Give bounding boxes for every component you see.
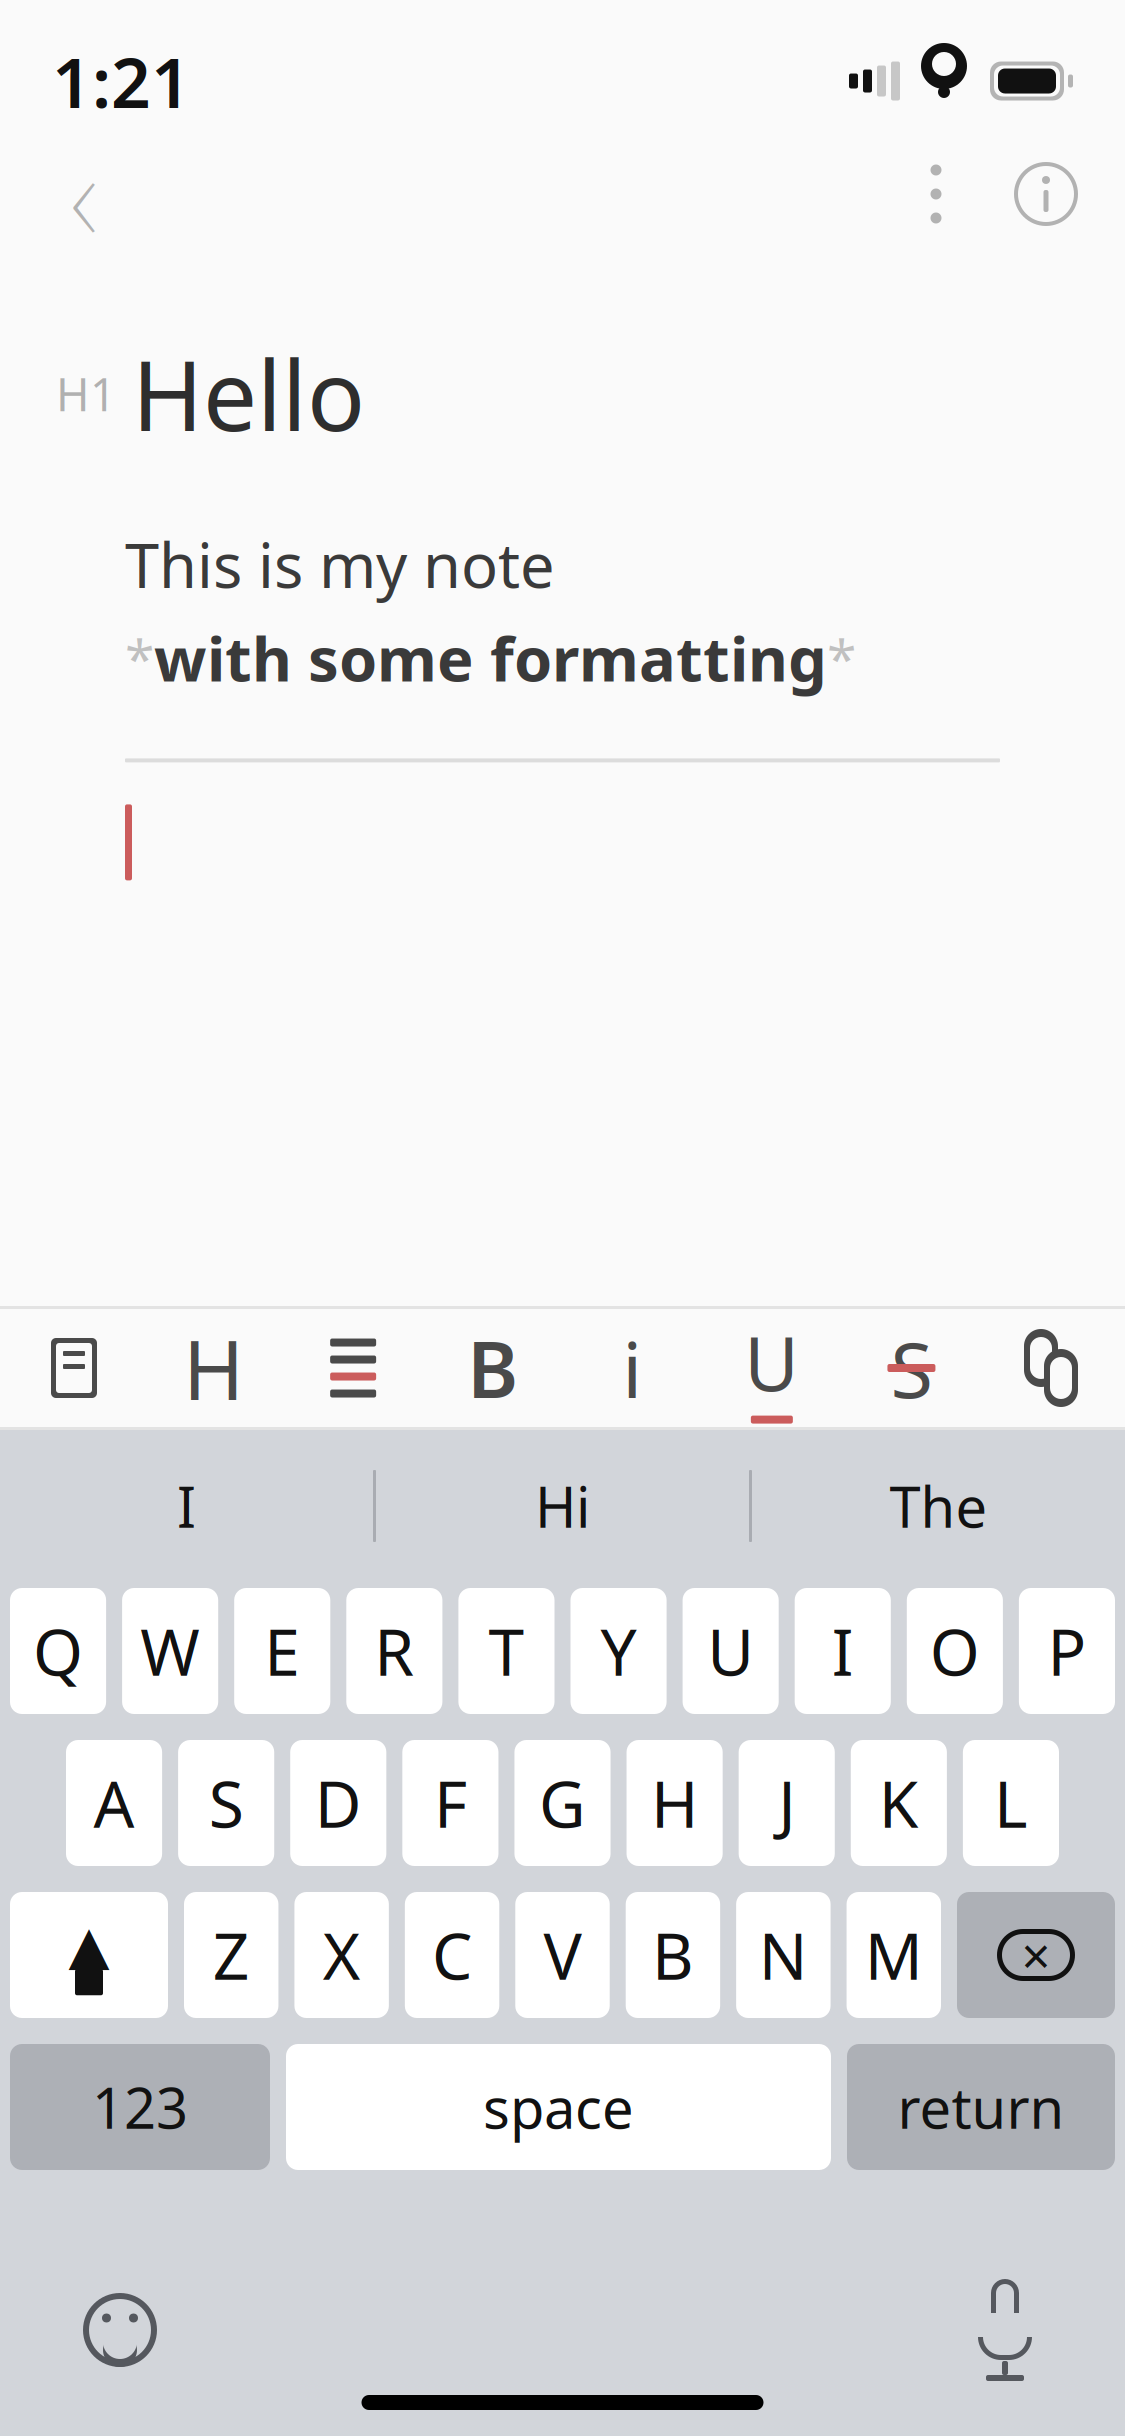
- button[interactable]: Paragraph list: [303, 1309, 403, 1427]
- staticText: R: [374, 1608, 414, 1693]
- button[interactable]: E: [234, 1588, 330, 1714]
- button[interactable]: R: [346, 1588, 442, 1714]
- button[interactable]: N: [736, 1892, 830, 2018]
- staticText: V: [543, 1912, 581, 1997]
- button[interactable]: Bold: [443, 1309, 543, 1427]
- button[interactable]: Strikethrough: [861, 1309, 961, 1427]
- button[interactable]: Heading: [164, 1309, 264, 1427]
- staticText: Hi: [535, 1469, 590, 1543]
- staticText: G: [539, 1760, 586, 1845]
- button[interactable]: V: [515, 1892, 610, 2018]
- button[interactable]: Dictate: [945, 2270, 1065, 2390]
- staticText: ▲: [68, 1915, 109, 1975]
- staticText: X: [323, 1912, 361, 1997]
- staticText: This is my note: [125, 523, 555, 605]
- staticText: space: [483, 2070, 634, 2144]
- button[interactable]: X: [294, 1892, 389, 2018]
- button[interactable]: Z: [184, 1892, 278, 2018]
- staticText: *: [125, 622, 154, 693]
- staticText: S: [209, 1760, 244, 1845]
- staticText: U: [707, 1608, 754, 1693]
- staticText: return: [897, 2070, 1064, 2144]
- staticText: I: [832, 1608, 854, 1693]
- staticText: B: [467, 1317, 518, 1419]
- button[interactable]: Q: [10, 1588, 106, 1714]
- button[interactable]: D: [290, 1740, 386, 1866]
- staticText: T: [488, 1608, 524, 1693]
- button[interactable]: Info: [991, 139, 1101, 249]
- staticText: *: [827, 622, 856, 693]
- button[interactable]: J: [739, 1740, 835, 1866]
- button[interactable]: B: [626, 1892, 720, 2018]
- button[interactable]: Shift: [10, 1892, 168, 2018]
- staticText: N: [759, 1912, 808, 1997]
- staticText: i: [622, 1317, 642, 1419]
- button[interactable]: I: [0, 1430, 373, 1582]
- staticText: J: [778, 1760, 795, 1845]
- button[interactable]: Delete: [957, 1892, 1115, 2018]
- button[interactable]: More options: [881, 139, 991, 249]
- staticText: A: [94, 1760, 135, 1845]
- staticText: Hello: [132, 330, 365, 457]
- staticText: ‹: [70, 109, 98, 279]
- staticText: U: [744, 1312, 799, 1412]
- button[interactable]: Italic: [582, 1309, 682, 1427]
- staticText: B: [652, 1912, 694, 1997]
- button[interactable]: H: [627, 1740, 723, 1866]
- staticText: C: [432, 1912, 472, 1997]
- staticText: Y: [600, 1608, 636, 1693]
- staticText: Z: [213, 1912, 250, 1997]
- staticText: W: [140, 1608, 200, 1693]
- button[interactable]: L: [963, 1740, 1059, 1866]
- button[interactable]: Y: [570, 1588, 667, 1714]
- staticText: 123: [92, 2070, 188, 2144]
- button[interactable]: return: [847, 2044, 1115, 2170]
- button[interactable]: P: [1019, 1588, 1115, 1714]
- button[interactable]: C: [405, 1892, 499, 2018]
- button[interactable]: F: [402, 1740, 498, 1866]
- button[interactable]: Note template: [24, 1309, 124, 1427]
- button[interactable]: K: [851, 1740, 947, 1866]
- staticText: P: [1047, 1608, 1086, 1693]
- staticText: with some formatting: [154, 617, 827, 698]
- staticText: K: [879, 1760, 919, 1845]
- button[interactable]: Back: [24, 134, 144, 254]
- button[interactable]: W: [122, 1588, 218, 1714]
- button[interactable]: Insert link: [1001, 1309, 1101, 1427]
- button[interactable]: U: [683, 1588, 779, 1714]
- staticText: H: [651, 1760, 698, 1845]
- button[interactable]: I: [795, 1588, 891, 1714]
- staticText: H1: [56, 364, 116, 424]
- button[interactable]: T: [458, 1588, 554, 1714]
- button[interactable]: O: [907, 1588, 1003, 1714]
- staticText: D: [315, 1760, 362, 1845]
- button[interactable]: G: [514, 1740, 610, 1866]
- staticText: L: [994, 1760, 1028, 1845]
- button[interactable]: Emoji keyboard: [60, 2270, 180, 2390]
- staticText: 1:21: [52, 35, 191, 127]
- button[interactable]: S: [178, 1740, 274, 1866]
- staticText: I: [177, 1469, 196, 1543]
- button[interactable]: Hi: [376, 1430, 749, 1582]
- staticText: H: [183, 1313, 244, 1423]
- button[interactable]: A: [66, 1740, 162, 1866]
- button[interactable]: Underline: [722, 1309, 822, 1427]
- staticText: F: [434, 1760, 467, 1845]
- button[interactable]: M: [847, 1892, 941, 2018]
- staticText: The: [889, 1469, 987, 1543]
- staticText: M: [865, 1912, 923, 1997]
- staticText: S: [890, 1317, 932, 1419]
- staticText: ×: [1021, 1921, 1050, 1989]
- button[interactable]: The: [752, 1430, 1125, 1582]
- button[interactable]: 123: [10, 2044, 270, 2170]
- staticText: E: [264, 1608, 300, 1693]
- staticText: O: [930, 1608, 980, 1693]
- button[interactable]: space: [286, 2044, 831, 2170]
- staticText: Q: [33, 1608, 83, 1693]
